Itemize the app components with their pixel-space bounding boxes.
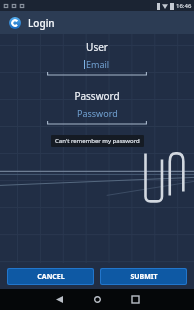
staticText: Password (74, 89, 120, 103)
staticText: 16:46 (176, 2, 192, 10)
button[interactable]: Recent apps (120, 289, 150, 310)
button[interactable]: App logo (9, 17, 21, 29)
button[interactable]: CANCEL (8, 269, 93, 284)
button[interactable]: Email (47, 58, 147, 76)
button[interactable]: Home (82, 289, 112, 310)
button[interactable]: Can't remember my password (51, 135, 144, 147)
staticText: Login (28, 16, 55, 30)
button[interactable]: Password (47, 107, 147, 125)
staticText: CANCEL (37, 272, 65, 282)
staticText: Password (77, 107, 118, 119)
staticText: Email (86, 58, 110, 70)
button[interactable]: Back (44, 289, 74, 310)
button[interactable]: SUBMIT (101, 269, 186, 284)
staticText: SUBMIT (130, 272, 158, 282)
staticText: Can't remember my password (55, 137, 140, 145)
staticText: User (86, 40, 108, 54)
